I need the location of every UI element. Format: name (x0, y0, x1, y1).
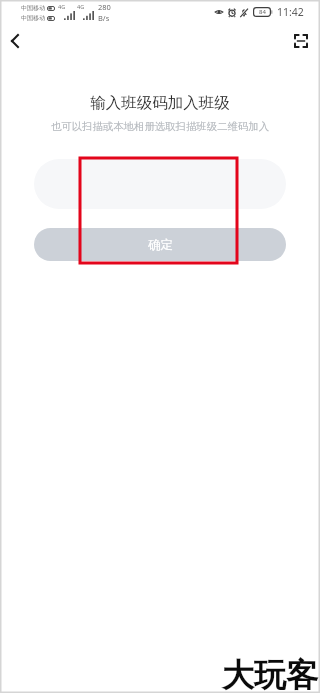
staticText: 中国移动 (21, 14, 45, 22)
button[interactable]: Back (0, 26, 30, 56)
button[interactable]: 确定 (34, 228, 286, 261)
staticText: 4G (58, 3, 66, 10)
staticText: 4G (77, 3, 85, 10)
staticText: 11:42 (277, 5, 304, 19)
staticText: 中国移动 (21, 4, 45, 12)
staticText: 84 (259, 8, 266, 16)
button[interactable]: Scan QR code (287, 27, 315, 55)
button[interactable] (34, 159, 286, 209)
staticText: B/s (98, 13, 110, 23)
staticText: 280 (98, 2, 111, 12)
staticText: 确定 (148, 237, 173, 253)
staticText: 大玩客 (222, 655, 318, 693)
staticText: 也可以扫描或本地相册选取扫描班级二维码加入 (0, 120, 320, 133)
staticText: 输入班级码加入班级 (0, 93, 320, 113)
